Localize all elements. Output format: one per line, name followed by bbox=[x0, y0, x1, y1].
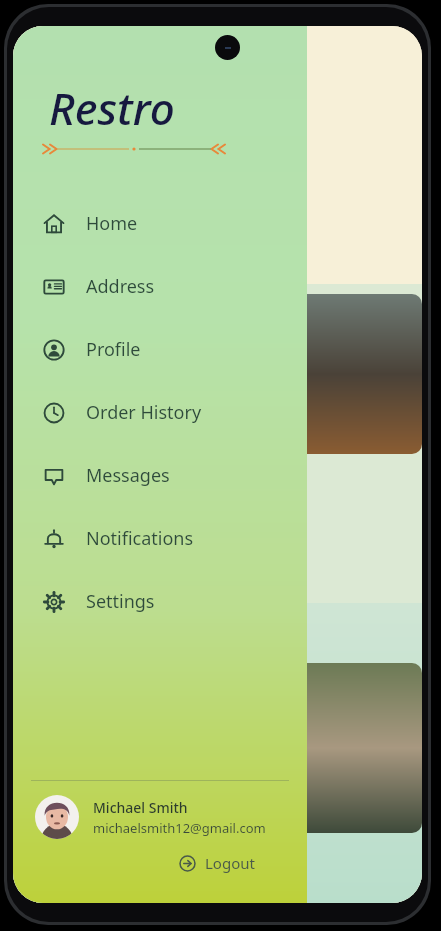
button[interactable]: Messages bbox=[13, 444, 307, 507]
button[interactable]: Order History bbox=[13, 381, 307, 444]
button[interactable]: Home bbox=[13, 192, 307, 255]
staticText: Home bbox=[86, 211, 138, 236]
staticText: Messages bbox=[86, 463, 170, 488]
button[interactable]: Logout bbox=[167, 849, 307, 877]
staticText: Order History bbox=[86, 400, 202, 425]
staticText: Notifications bbox=[86, 526, 194, 551]
button[interactable]: Settings bbox=[13, 570, 307, 633]
staticText: Michael Smith bbox=[93, 798, 188, 817]
staticText: michaelsmith12@gmail.com bbox=[93, 819, 266, 837]
staticText: Profile bbox=[86, 337, 141, 362]
button[interactable]: Address bbox=[13, 255, 307, 318]
button[interactable]: Profile bbox=[13, 318, 307, 381]
staticText: Address bbox=[86, 274, 155, 299]
button[interactable]: Notifications bbox=[13, 507, 307, 570]
staticText: Settings bbox=[86, 589, 155, 614]
staticText: Logout bbox=[205, 853, 255, 873]
button[interactable]: Michael Smith bbox=[13, 795, 307, 839]
staticText: Restro bbox=[49, 78, 175, 138]
